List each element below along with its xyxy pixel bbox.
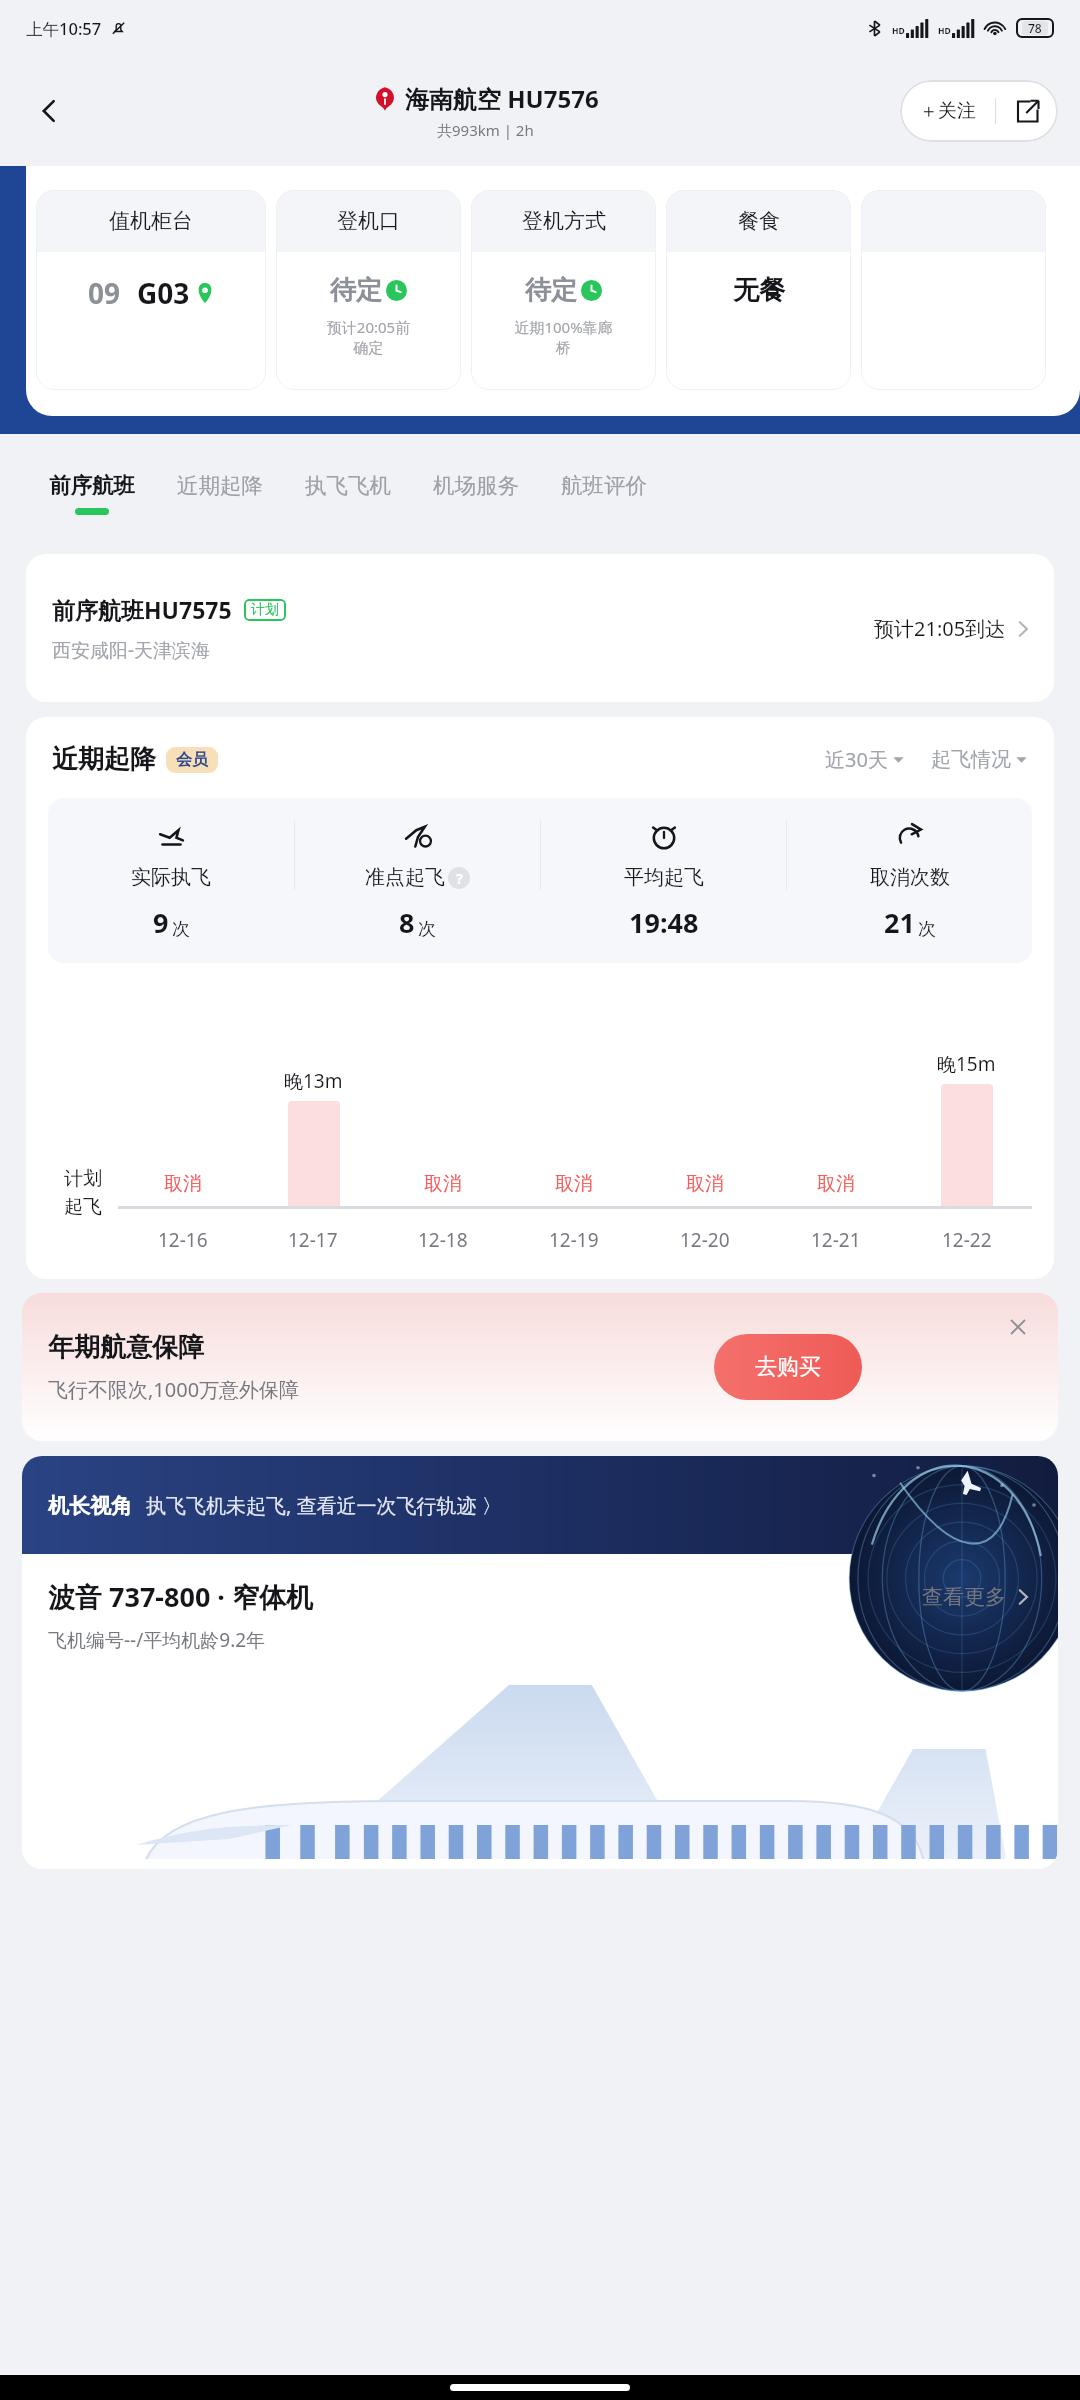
button[interactable]: 航班评价 xyxy=(558,472,650,515)
staticText: 实际执飞 xyxy=(131,865,211,890)
staticText: 上午10:57 xyxy=(26,17,102,40)
staticText: 会员 xyxy=(176,750,208,770)
staticText: 机场服务 xyxy=(433,472,519,499)
staticText: 取消 xyxy=(555,1172,593,1196)
staticText: 12-16 xyxy=(158,1227,208,1253)
staticText: 无餐 xyxy=(733,274,785,307)
staticText: 12-17 xyxy=(288,1227,338,1253)
button[interactable]: 起飞情况 xyxy=(931,747,1028,772)
staticText: 起飞 xyxy=(64,1195,102,1219)
staticText: 去购买 xyxy=(755,1353,821,1381)
staticText: 晚15m xyxy=(937,1051,996,1077)
button[interactable]: 执飞飞机 xyxy=(302,472,394,515)
staticText: 12-21 xyxy=(811,1227,861,1253)
staticText: 8 xyxy=(399,904,415,941)
staticText: 海南航空 HU7576 xyxy=(405,82,599,115)
staticText: HD xyxy=(892,25,905,37)
staticText: 取消 xyxy=(686,1172,724,1196)
button[interactable]: 近30天 xyxy=(825,746,905,773)
button[interactable]: 餐食 xyxy=(666,190,851,390)
staticText: 取消次数 xyxy=(870,865,950,890)
staticText: 9 xyxy=(153,904,169,941)
staticText: 09 xyxy=(88,274,121,312)
button[interactable]: 波音 737-800 · 窄体机 xyxy=(48,1578,1032,1615)
staticText: 登机口 xyxy=(337,208,400,234)
staticText: 登机方式 xyxy=(522,208,606,234)
staticText: HD xyxy=(938,25,951,37)
button[interactable]: 机长视角 xyxy=(22,1456,1058,1554)
staticText: 近期起降 xyxy=(177,472,263,499)
staticText: 待定 xyxy=(330,274,382,307)
staticText: 执飞飞机未起飞, 查看近一次飞行轨迹 〉 xyxy=(146,1492,502,1519)
staticText: 取消 xyxy=(164,1172,202,1196)
button[interactable]: 平均起飞 xyxy=(541,820,786,941)
staticText: 12-22 xyxy=(942,1227,992,1253)
staticText: 机长视角 xyxy=(48,1493,132,1519)
staticText: 计划 xyxy=(251,601,279,619)
button[interactable]: 准点起飞 xyxy=(295,820,540,941)
staticText: 年期航意保障 xyxy=(48,1331,204,1364)
staticText: 值机柜台 xyxy=(109,208,193,234)
button[interactable]: 实际执飞 xyxy=(48,820,294,941)
button[interactable]: 近期起降 xyxy=(174,472,266,515)
staticText: ? xyxy=(456,869,463,888)
staticText: 次 xyxy=(918,918,936,941)
staticText: 取消 xyxy=(424,1172,462,1196)
staticText: 晚13m xyxy=(284,1068,343,1094)
staticText: 12-18 xyxy=(418,1227,468,1253)
staticText: 平均起飞 xyxy=(624,865,704,890)
staticText: 西安咸阳-天津滨海 xyxy=(52,637,211,663)
staticText: 78 xyxy=(1028,20,1042,36)
button[interactable]: ＋关注 xyxy=(900,80,995,142)
staticText: 次 xyxy=(418,918,436,941)
staticText: 12-20 xyxy=(680,1227,730,1253)
staticText: 预计21:05到达 xyxy=(874,615,1006,642)
button[interactable]: 前序航班 xyxy=(46,472,138,515)
staticText: 12-19 xyxy=(549,1227,599,1253)
staticText: 航班评价 xyxy=(561,472,647,499)
button[interactable]: 机场服务 xyxy=(430,472,522,515)
staticText: 19:48 xyxy=(629,904,699,941)
button[interactable]: Back xyxy=(22,84,76,138)
staticText: 前序航班HU7575 xyxy=(52,594,232,625)
button[interactable]: 前序航班HU7575 xyxy=(26,554,1054,702)
staticText: 共993km | 2h xyxy=(437,120,534,140)
staticText: 21 xyxy=(884,904,915,941)
staticText: 计划 xyxy=(64,1167,102,1191)
staticText: 餐食 xyxy=(738,208,780,234)
staticText: ＋关注 xyxy=(919,99,976,123)
button[interactable]: Close xyxy=(998,1307,1038,1347)
staticText: 起飞情况 xyxy=(931,747,1011,772)
staticText: 查看更多 xyxy=(922,1584,1006,1610)
staticText: 待定 xyxy=(525,274,577,307)
staticText: 执飞飞机 xyxy=(305,472,391,499)
button[interactable]: Share xyxy=(996,80,1058,142)
button[interactable] xyxy=(861,190,1046,390)
button[interactable]: 登机方式 xyxy=(471,190,656,390)
button[interactable]: 去购买 xyxy=(714,1334,862,1400)
staticText: 飞机编号--/平均机龄9.2年 xyxy=(48,1627,266,1653)
staticText: 波音 737-800 · 窄体机 xyxy=(48,1578,313,1615)
staticText: 近期100%靠廊 桥 xyxy=(477,317,650,358)
staticText: 飞行不限次,1000万意外保障 xyxy=(48,1376,300,1403)
staticText: G03 xyxy=(137,274,190,312)
staticText: 前序航班 xyxy=(49,472,135,499)
button[interactable]: 取消次数 xyxy=(787,820,1032,941)
staticText: 近30天 xyxy=(825,746,888,773)
staticText: 准点起飞 xyxy=(365,865,445,890)
staticText: 次 xyxy=(172,918,190,941)
button[interactable]: 登机口 xyxy=(276,190,461,390)
staticText: 近期起降 xyxy=(52,743,156,776)
staticText: 预计20:05前 确定 xyxy=(282,317,455,358)
button[interactable]: 年期航意保障 xyxy=(22,1293,1058,1441)
button[interactable]: 值机柜台 xyxy=(36,190,266,390)
staticText: 取消 xyxy=(817,1172,855,1196)
